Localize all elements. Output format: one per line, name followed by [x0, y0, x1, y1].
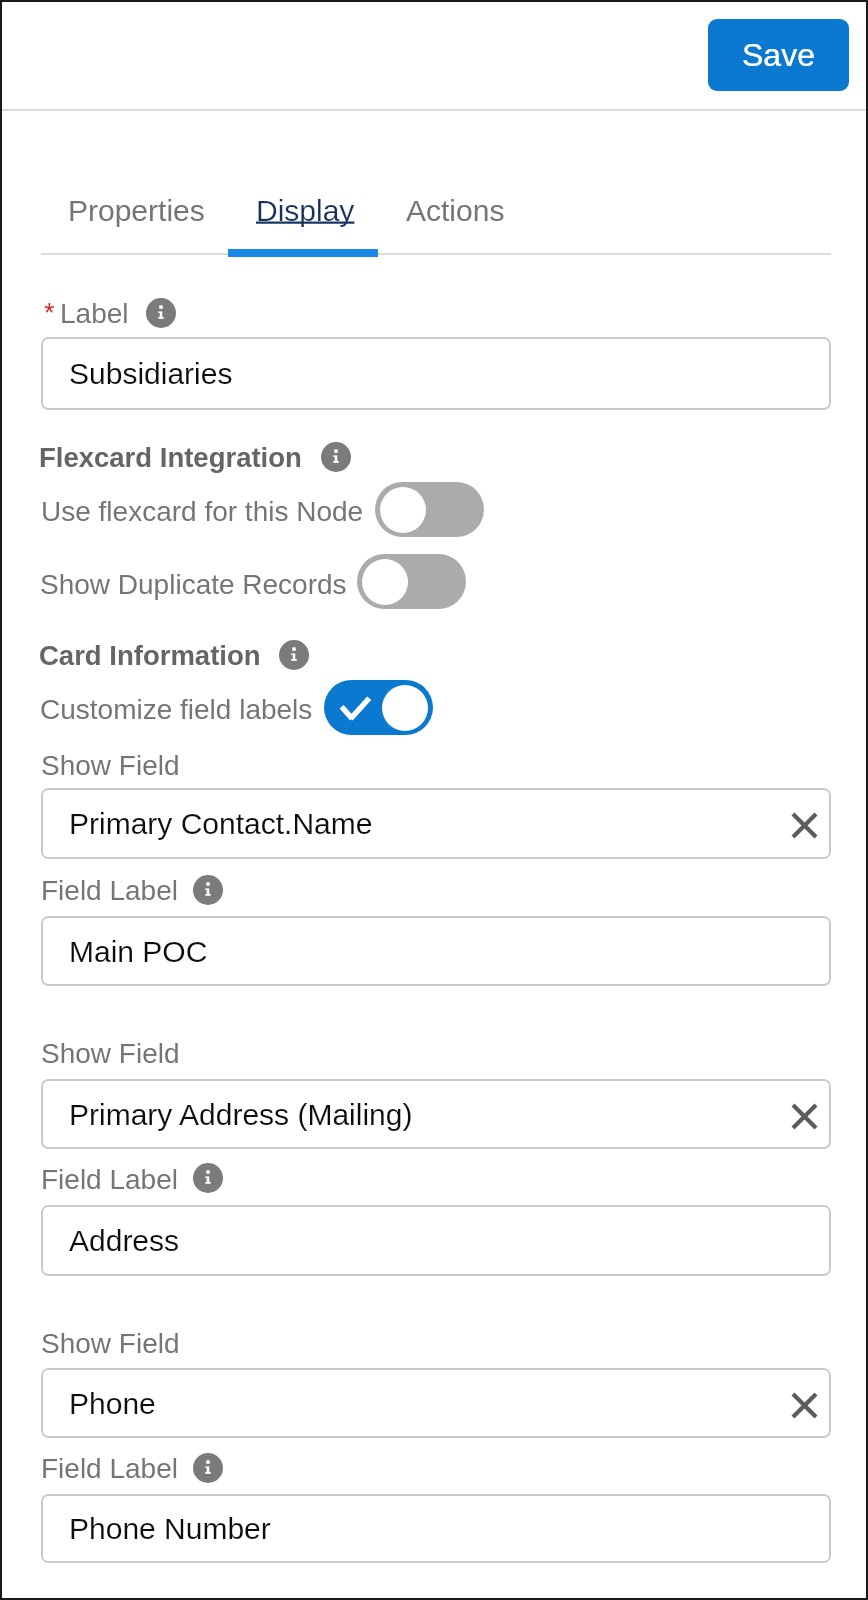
staticText: Save: [742, 37, 815, 73]
button[interactable]: Primary Contact.Name: [41, 788, 831, 859]
staticText: Field Label: [41, 1453, 178, 1484]
staticText: Card Information: [39, 640, 261, 671]
button[interactable]: Toggle, off: [357, 554, 466, 609]
staticText: Phone Number: [69, 1512, 271, 1546]
staticText: Show Field: [41, 1038, 180, 1069]
staticText: Flexcard Integration: [39, 442, 302, 473]
staticText: *: [44, 298, 55, 328]
button[interactable]: Toggle, on: [324, 680, 433, 735]
staticText: Actions: [406, 194, 505, 228]
staticText: Subsidiaries: [69, 357, 233, 391]
staticText: Primary Contact.Name: [69, 807, 373, 841]
button[interactable]: More information: [193, 1163, 223, 1193]
staticText: Properties: [68, 194, 205, 228]
staticText: Display: [256, 194, 355, 228]
button[interactable]: Display: [213, 180, 393, 255]
staticText: Label: [60, 298, 129, 329]
staticText: Show Duplicate Records: [40, 569, 347, 600]
button[interactable]: More information: [279, 640, 309, 670]
button[interactable]: Clear field: [782, 1383, 826, 1427]
button[interactable]: Save: [708, 19, 849, 91]
button[interactable]: Toggle, off: [375, 482, 484, 537]
button[interactable]: Subsidiaries: [41, 337, 831, 410]
staticText: Primary Address (Mailing): [69, 1098, 413, 1132]
staticText: Field Label: [41, 1164, 178, 1195]
staticText: Show Field: [41, 750, 180, 781]
button[interactable]: More information: [146, 298, 176, 328]
button[interactable]: Primary Address (Mailing): [41, 1079, 831, 1149]
button[interactable]: Clear field: [782, 1094, 826, 1138]
staticText: Main POC: [69, 935, 208, 969]
staticText: Address: [69, 1224, 180, 1258]
button[interactable]: More information: [193, 1453, 223, 1483]
button[interactable]: More information: [321, 442, 351, 472]
button[interactable]: Actions: [393, 180, 518, 255]
button[interactable]: Phone Number: [41, 1494, 831, 1563]
button[interactable]: Main POC: [41, 916, 831, 986]
staticText: Show Field: [41, 1328, 180, 1359]
button[interactable]: Clear field: [782, 803, 826, 847]
staticText: Phone: [69, 1387, 156, 1421]
staticText: Use flexcard for this Node: [41, 496, 364, 527]
button[interactable]: Address: [41, 1205, 831, 1276]
button[interactable]: More information: [193, 875, 223, 905]
button[interactable]: Properties: [41, 180, 213, 255]
button[interactable]: Phone: [41, 1368, 831, 1438]
staticText: Customize field labels: [40, 694, 313, 725]
staticText: Field Label: [41, 875, 178, 906]
